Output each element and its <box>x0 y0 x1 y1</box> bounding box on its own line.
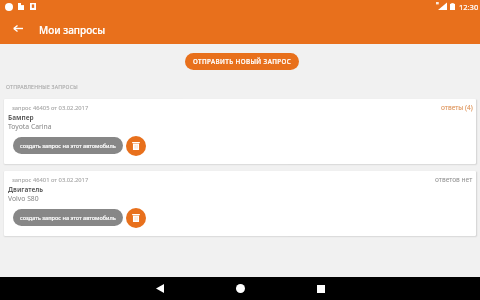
staticText: запрос 46405 от 03.02.2017 <box>12 104 89 112</box>
button[interactable]: создать запрос на этот автомобиль <box>13 209 123 226</box>
button[interactable]: Back <box>0 18 38 44</box>
staticText: 12:30 <box>459 2 479 12</box>
button[interactable]: Recent apps <box>301 277 341 300</box>
button[interactable]: Back <box>140 277 180 300</box>
staticText: Мои запросы <box>39 23 106 37</box>
staticText: Двигатель <box>8 185 44 194</box>
button[interactable]: Delete request <box>126 208 146 228</box>
staticText: ОТПРАВИТЬ НОВЫЙ ЗАПРОС <box>193 57 292 66</box>
button[interactable]: Home <box>220 277 260 300</box>
button[interactable]: ОТПРАВИТЬ НОВЫЙ ЗАПРОС <box>185 53 299 70</box>
staticText: Volvo S80 <box>8 194 39 203</box>
button[interactable]: создать запрос на этот автомобиль <box>13 137 123 154</box>
button[interactable]: запрос 46405 от 03.02.2017 <box>4 99 476 164</box>
staticText: создать запрос на этот автомобиль <box>20 142 116 150</box>
staticText: Toyota Carina <box>8 122 52 131</box>
staticText: ответов нет <box>435 175 473 184</box>
staticText: ОТПРАВЛЕННЫЕ ЗАПРОСЫ <box>6 83 78 90</box>
staticText: Бампер <box>8 113 34 122</box>
staticText: создать запрос на этот автомобиль <box>20 214 116 222</box>
staticText: ответы (4) <box>441 103 473 112</box>
staticText: запрос 46401 от 03.02.2017 <box>12 176 89 184</box>
button[interactable]: запрос 46401 от 03.02.2017 <box>4 171 476 236</box>
button[interactable]: Delete request <box>126 136 146 156</box>
